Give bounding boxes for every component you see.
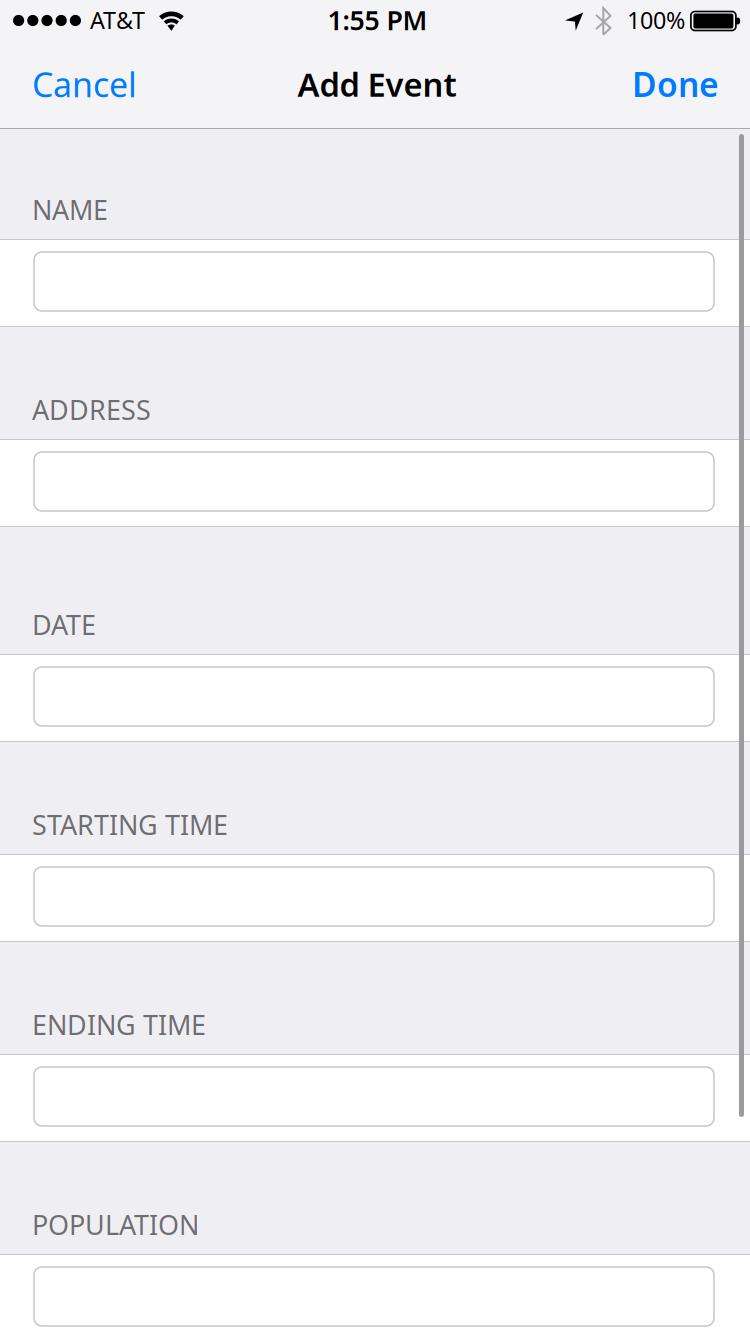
staticText: 100% — [627, 4, 685, 36]
staticText: Add Event — [297, 62, 456, 106]
button[interactable]: Done — [616, 40, 735, 128]
button[interactable]: Text field — [34, 452, 714, 511]
button[interactable]: Text field — [34, 867, 714, 926]
staticText: AT&T — [90, 4, 145, 36]
button[interactable]: Text field — [34, 667, 714, 726]
staticText: NAME — [32, 191, 108, 228]
staticText: STARTING TIME — [32, 806, 228, 843]
button[interactable]: Cancel — [16, 40, 153, 128]
staticText: ENDING TIME — [32, 1006, 206, 1043]
button[interactable]: Text field — [34, 252, 714, 311]
staticText: Done — [632, 61, 719, 107]
button[interactable]: Text field — [34, 1267, 714, 1326]
staticText: ADDRESS — [32, 391, 151, 428]
button[interactable]: Text field — [34, 1067, 714, 1126]
staticText: DATE — [32, 606, 96, 643]
staticText: POPULATION — [32, 1206, 199, 1243]
staticText: 1:55 PM — [327, 2, 427, 38]
staticText: Cancel — [32, 61, 137, 107]
